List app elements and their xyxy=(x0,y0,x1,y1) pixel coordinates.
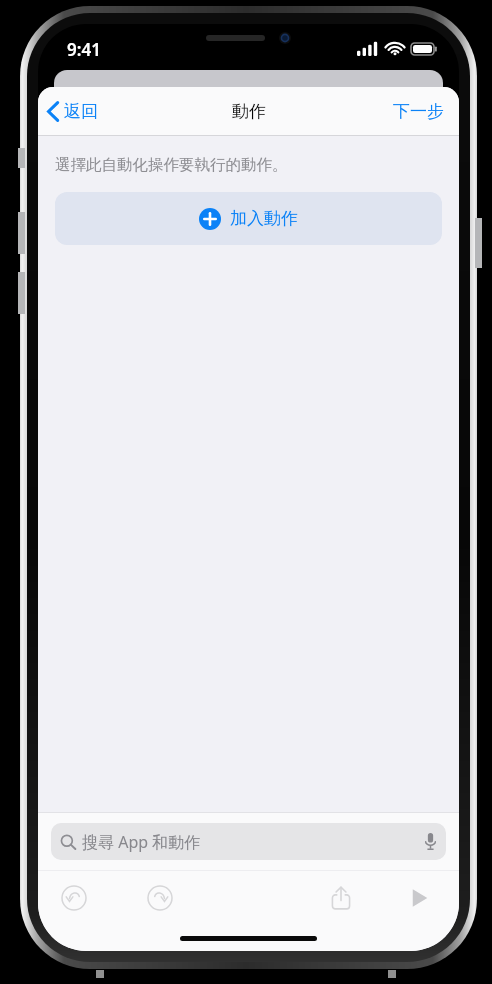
staticText: 下一步 xyxy=(393,101,444,122)
button[interactable]: Share xyxy=(319,876,363,920)
button[interactable]: 下一步 xyxy=(378,93,459,130)
button[interactable]: Redo xyxy=(138,876,182,920)
staticText: 返回 xyxy=(64,101,98,122)
staticText: 動作 xyxy=(232,101,266,122)
button[interactable]: 返回 xyxy=(38,95,108,128)
button[interactable]: Undo xyxy=(52,876,96,920)
button[interactable]: Run xyxy=(397,876,441,920)
staticText: 搜尋 App 和動作 xyxy=(82,831,201,853)
button[interactable]: 搜尋 App 和動作 xyxy=(51,823,446,860)
staticText: 加入動作 xyxy=(230,208,298,229)
button[interactable]: 加入動作 xyxy=(55,192,442,245)
staticText: 9:41 xyxy=(67,38,101,61)
staticText: 選擇此自動化操作要執行的動作。 xyxy=(55,155,288,175)
button[interactable]: Voice search xyxy=(415,833,446,850)
